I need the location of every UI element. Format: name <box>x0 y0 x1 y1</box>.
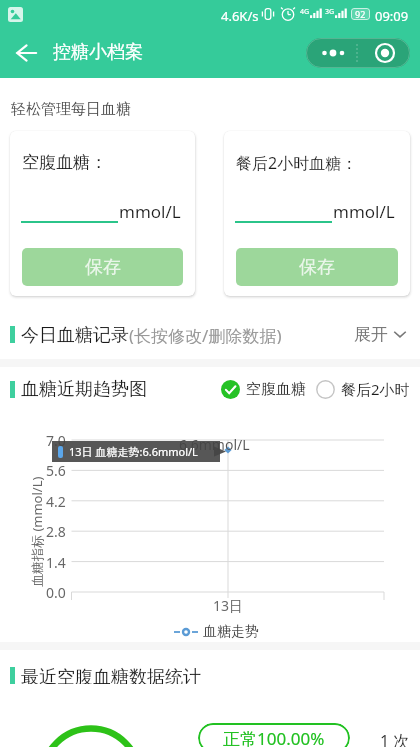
staticText: 展开 <box>354 324 388 344</box>
staticText: 2.8 <box>46 522 66 541</box>
staticText: 09:09 <box>375 7 409 25</box>
staticText: (长按修改/删除数据) <box>129 324 282 344</box>
staticText: 92 <box>355 8 366 20</box>
button[interactable]: 餐后2小时 <box>316 379 410 399</box>
staticText: 最近空腹血糖数据统计 <box>21 666 201 684</box>
button[interactable]: 展开 <box>354 324 408 344</box>
button[interactable]: More <box>306 38 358 68</box>
staticText: 血糖走势 <box>203 623 259 641</box>
staticText: 4.6K/s <box>221 7 259 25</box>
staticText: 4.2 <box>46 492 66 511</box>
staticText: mmol/L <box>119 200 181 223</box>
staticText: 4G <box>300 7 310 17</box>
staticText: 空腹血糖 <box>246 380 306 399</box>
staticText: 正常100.00% <box>223 727 325 747</box>
staticText: 保存 <box>299 256 335 279</box>
staticText: mmol/L <box>333 200 395 223</box>
staticText: 轻松管理每日血糖 <box>11 100 131 119</box>
staticText: 13日 血糖走势:6.6mmol/L <box>69 444 198 459</box>
staticText: 血糖近期趋势图 <box>21 378 147 400</box>
staticText: 空腹血糖： <box>22 152 107 173</box>
button[interactable]: 保存 <box>22 248 183 286</box>
staticText: 7.0 <box>46 431 66 450</box>
staticText: 1 次 <box>380 730 410 747</box>
staticText: 1.4 <box>46 553 66 572</box>
staticText: 0.0 <box>46 583 66 602</box>
staticText: 血糖指标 (mmol/L) <box>28 476 46 587</box>
staticText: 5.6 <box>46 461 66 480</box>
staticText: 餐后2小时 <box>341 379 410 399</box>
staticText: 餐后2小时血糖： <box>236 152 358 174</box>
button[interactable]: Close <box>358 38 410 68</box>
staticText: 3G <box>325 7 335 17</box>
button[interactable]: 正常100.00% <box>198 723 350 747</box>
staticText: 今日血糖记录 <box>21 324 129 344</box>
staticText: 6.6mmol/L <box>179 435 250 454</box>
staticText: 控糖小档案 <box>53 41 143 64</box>
staticText: 13日 <box>213 596 244 615</box>
staticText: 保存 <box>85 256 121 279</box>
button[interactable]: Back <box>12 40 38 66</box>
button[interactable]: 空腹血糖 <box>221 380 306 399</box>
button[interactable]: 保存 <box>236 248 398 286</box>
